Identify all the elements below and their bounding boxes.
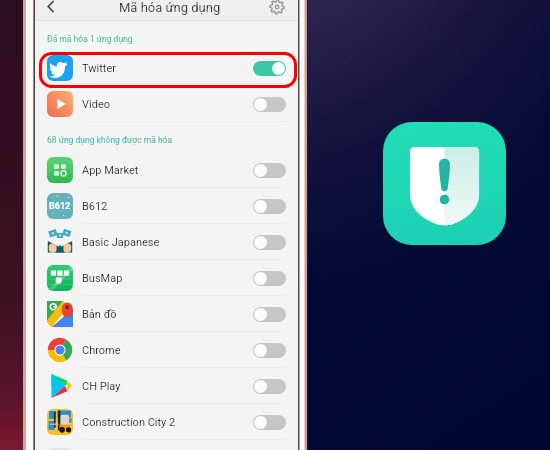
button[interactable]: Twitter (35, 50, 298, 86)
button[interactable]: Toggle off (253, 97, 286, 112)
button[interactable]: App encryption (383, 122, 506, 245)
button[interactable]: Basic Japanese (35, 224, 298, 260)
button[interactable]: Toggle off (253, 235, 286, 250)
staticText: Twitter (82, 62, 116, 75)
button[interactable]: Chrome (35, 332, 298, 368)
button[interactable]: App Market (35, 152, 298, 188)
staticText: 68 ứng dụng không được mã hóa (47, 135, 173, 145)
button[interactable]: Toggle off (253, 271, 286, 286)
button[interactable]: CH Play (35, 368, 298, 404)
button[interactable]: Toggle off (253, 307, 286, 322)
button[interactable]: Back (41, 0, 61, 15)
button[interactable]: B612 (35, 188, 298, 224)
button[interactable]: Settings (269, 0, 285, 15)
staticText: App Market (82, 164, 139, 177)
button[interactable]: Toggle off (253, 379, 286, 394)
button[interactable]: Construction City 2 (35, 404, 298, 440)
staticText: B612 (49, 201, 71, 212)
staticText: Basic Japanese (82, 236, 160, 249)
button[interactable]: Toggle off (253, 415, 286, 430)
button[interactable]: Toggle on (253, 61, 286, 76)
staticText: Video (82, 98, 110, 111)
button[interactable]: Video (35, 86, 298, 122)
button[interactable]: Toggle off (253, 163, 286, 178)
button[interactable]: Toggle off (253, 343, 286, 358)
button[interactable]: Toggle off (253, 199, 286, 214)
staticText: Construction City 2 (82, 416, 176, 429)
button[interactable]: BusMap (35, 260, 298, 296)
button[interactable]: Bản đồ (35, 296, 298, 332)
staticText: Đã mã hóa 1 ứng dụng (47, 34, 133, 44)
staticText: CH Play (82, 380, 121, 393)
staticText: BusMap (82, 272, 123, 285)
staticText: Chrome (82, 344, 121, 357)
staticText: Bản đồ (82, 308, 117, 321)
staticText: Mã hóa ứng dụng (119, 0, 221, 15)
staticText: B612 (82, 200, 108, 213)
